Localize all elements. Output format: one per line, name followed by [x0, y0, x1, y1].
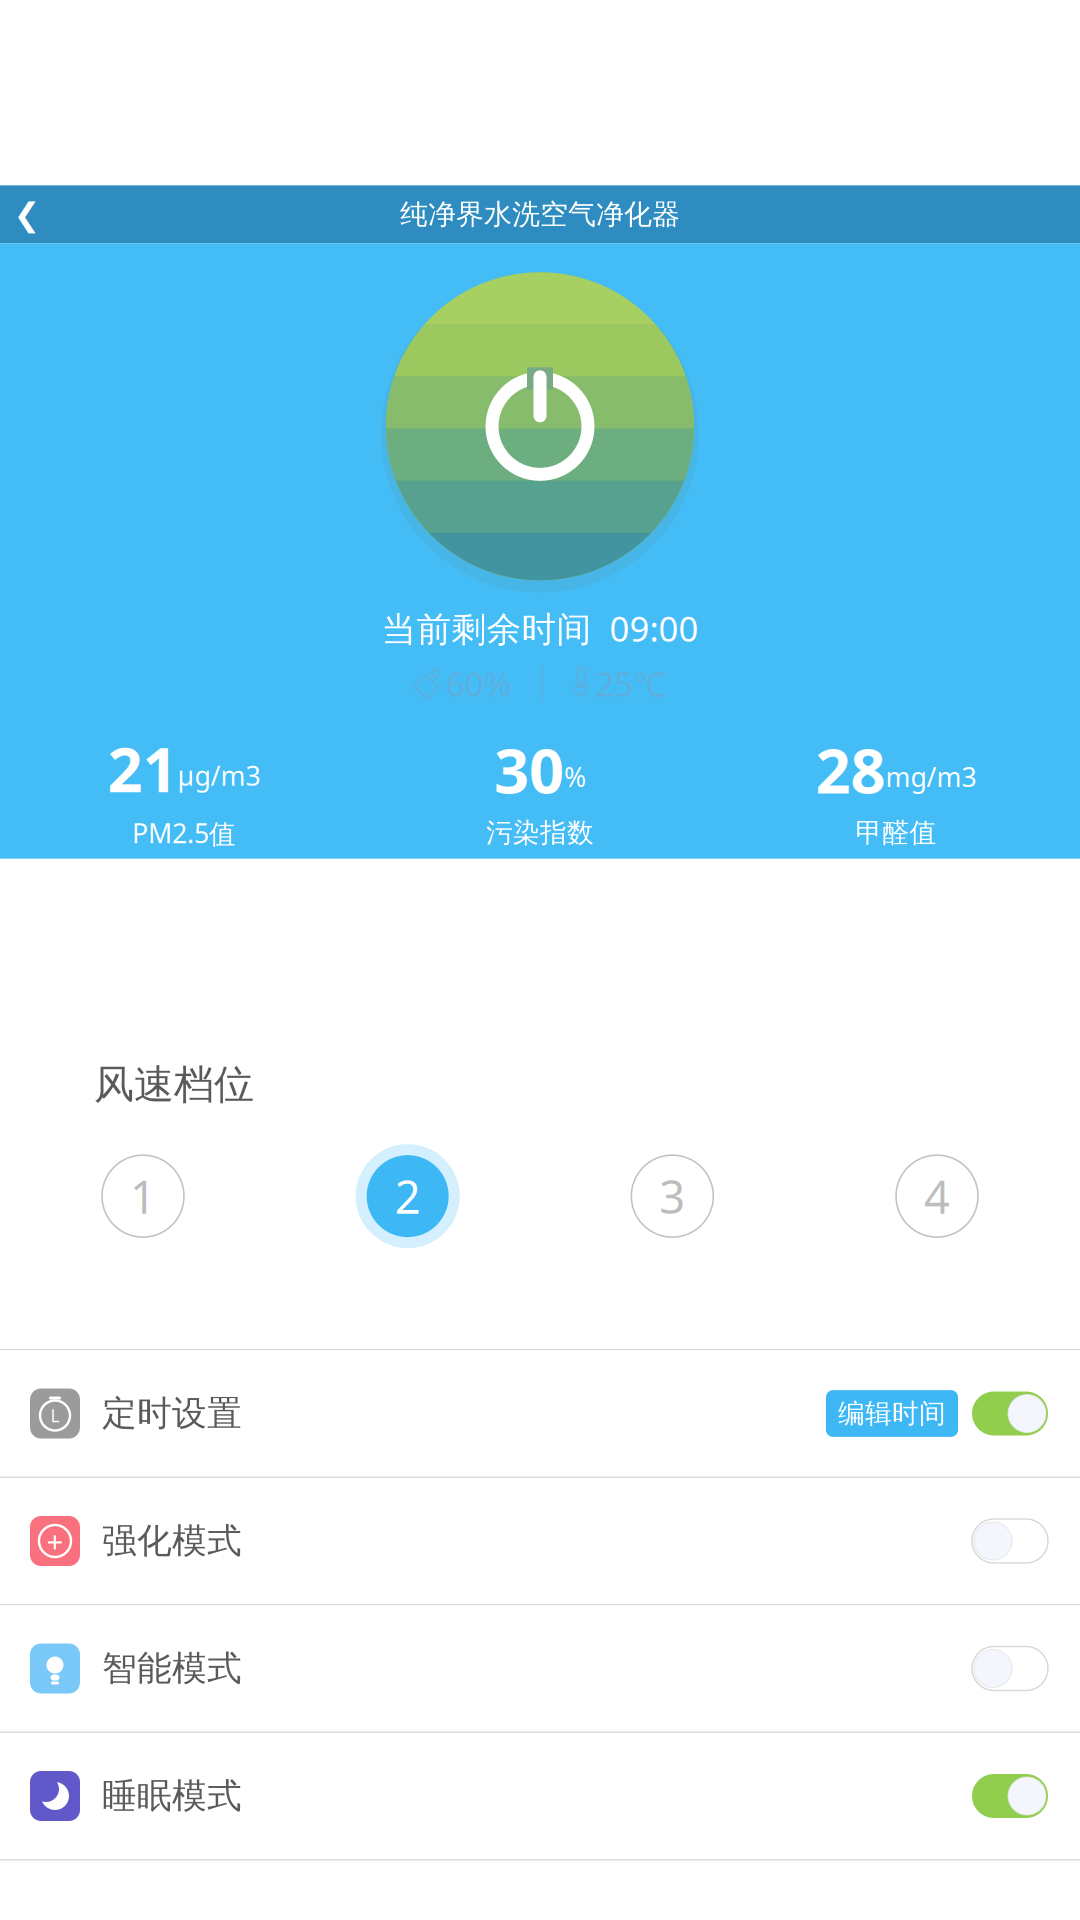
- staticText: PM2.5值: [132, 815, 236, 851]
- staticText: 28: [815, 729, 885, 810]
- staticText: 60%: [446, 661, 512, 706]
- button[interactable]: Toggle off: [970, 1516, 1050, 1566]
- staticText: 30: [494, 729, 564, 810]
- button[interactable]: +: [0, 1478, 1080, 1604]
- button[interactable]: Toggle off: [970, 1643, 1050, 1693]
- staticText: 1: [130, 1166, 156, 1226]
- button[interactable]: L: [0, 1350, 1080, 1476]
- button[interactable]: Power: [375, 261, 705, 591]
- staticText: 智能模式: [102, 1647, 242, 1690]
- staticText: 甲醛值: [855, 816, 936, 849]
- staticText: 21: [107, 728, 177, 809]
- staticText: ◇: [413, 664, 440, 703]
- button[interactable]: Toggle on: [970, 1388, 1050, 1438]
- button[interactable]: 4: [882, 1141, 992, 1251]
- staticText: 25℃: [595, 661, 666, 706]
- button[interactable]: Back: [0, 189, 54, 239]
- staticText: +: [46, 1521, 63, 1560]
- staticText: 定时设置: [102, 1392, 242, 1435]
- staticText: 编辑时间: [838, 1397, 946, 1430]
- staticText: 2: [395, 1166, 421, 1226]
- staticText: L: [50, 1404, 59, 1427]
- staticText: %: [564, 759, 586, 794]
- staticText: 污染指数: [486, 816, 594, 849]
- staticText: 当前剩余时间 09:00: [381, 605, 698, 651]
- staticText: µg/m3: [177, 758, 260, 793]
- button[interactable]: 2: [353, 1141, 463, 1251]
- button[interactable]: 1: [88, 1141, 198, 1251]
- staticText: 4: [924, 1166, 950, 1226]
- staticText: mg/m3: [885, 759, 976, 794]
- button[interactable]: 睡眠模式: [0, 1733, 1080, 1859]
- staticText: ❮: [13, 196, 40, 232]
- button[interactable]: Toggle on: [970, 1771, 1050, 1821]
- button[interactable]: 智能模式: [0, 1605, 1080, 1731]
- staticText: 3: [659, 1166, 685, 1226]
- staticText: 纯净界水洗空气净化器: [400, 197, 680, 232]
- staticText: 强化模式: [102, 1520, 242, 1562]
- staticText: 睡眠模式: [102, 1775, 242, 1817]
- staticText: 风速档位: [94, 1060, 254, 1109]
- button[interactable]: 3: [617, 1141, 727, 1251]
